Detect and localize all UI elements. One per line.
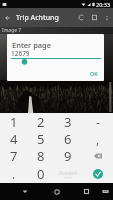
- button[interactable]: Recent apps: [79, 183, 94, 200]
- staticText: 1: [10, 113, 18, 130]
- staticText: Română: [59, 170, 77, 176]
- staticText: 8: [37, 147, 45, 165]
- other: Delete: [94, 153, 102, 159]
- button[interactable]: Română: [54, 165, 82, 183]
- button[interactable]: ,: [82, 130, 113, 147]
- staticText: Enter page: [12, 40, 52, 50]
- staticText: Trip Achtung: [16, 13, 59, 23]
- button[interactable]: 6: [54, 130, 82, 147]
- staticText: -: [96, 114, 100, 130]
- staticText: Image 7: [2, 27, 22, 34]
- staticText: 3: [64, 113, 72, 130]
- staticText: 6: [64, 130, 72, 147]
- staticText: 0: [37, 165, 45, 183]
- staticText: 20:33: [96, 1, 111, 8]
- button[interactable]: 1: [0, 113, 27, 130]
- button[interactable]: 0: [27, 165, 54, 183]
- button[interactable]: Home: [49, 183, 64, 200]
- button[interactable]: 3: [54, 113, 82, 130]
- staticText: 4: [10, 130, 18, 147]
- button[interactable]: .: [0, 165, 27, 183]
- staticText: OK: [90, 70, 98, 77]
- button[interactable]: Back: [17, 183, 32, 200]
- staticText: 5: [37, 130, 45, 147]
- button[interactable]: Delete: [82, 147, 113, 165]
- button[interactable]: Done: [91, 167, 105, 181]
- button[interactable]: 2: [27, 113, 54, 130]
- button[interactable]: 7: [0, 147, 27, 165]
- button[interactable]: Bookmarks: [88, 11, 101, 24]
- button[interactable]: OK: [88, 69, 100, 78]
- staticText: 2: [37, 113, 45, 130]
- staticText: 12679: [11, 49, 30, 58]
- button[interactable]: 4: [0, 130, 27, 147]
- button[interactable]: Done: [82, 165, 113, 183]
- button[interactable]: 5: [27, 130, 54, 147]
- button[interactable]: Navigate up: [0, 11, 14, 25]
- staticText: .: [12, 166, 16, 182]
- staticText: 7: [10, 147, 18, 165]
- button[interactable]: -: [82, 113, 113, 130]
- button[interactable]: More options: [101, 12, 113, 24]
- staticText: ,: [96, 131, 100, 147]
- staticText: 9: [64, 147, 72, 165]
- button[interactable]: Refresh: [75, 11, 88, 24]
- button[interactable]: 9: [54, 147, 82, 165]
- button[interactable]: Switch keyboard: [98, 183, 112, 200]
- button[interactable]: 8: [27, 147, 54, 165]
